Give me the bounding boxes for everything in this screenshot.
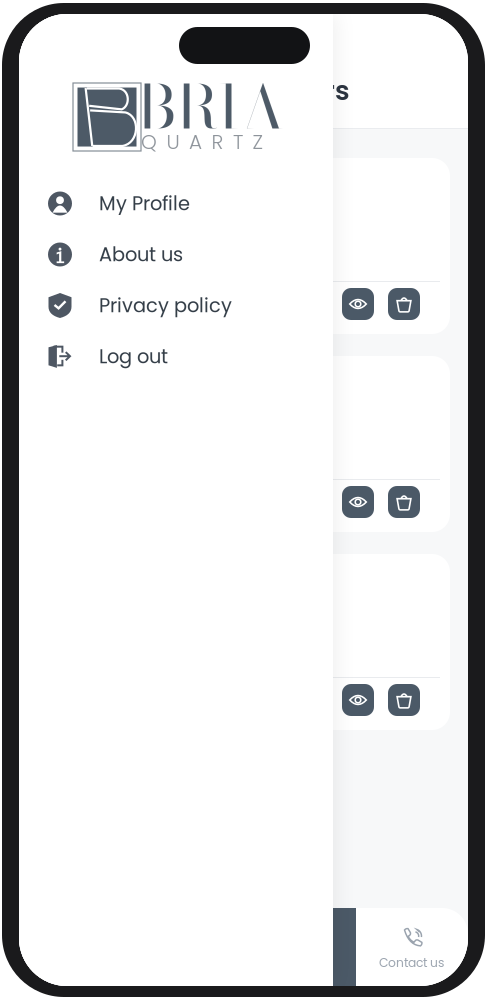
- button[interactable]: View order: [342, 288, 374, 320]
- button[interactable]: My Profile: [19, 178, 333, 229]
- button[interactable]: Delete order: [388, 684, 420, 716]
- button[interactable]: Contact us: [19, 908, 468, 986]
- button[interactable]: Delete order: [388, 288, 420, 320]
- button[interactable]: View order: [342, 486, 374, 518]
- button[interactable]: View order: [342, 684, 374, 716]
- button[interactable]: Delete order: [388, 486, 420, 518]
- staticText: Log out: [99, 343, 168, 370]
- staticText: My Profile: [99, 190, 190, 217]
- staticText: About us: [99, 241, 183, 268]
- button[interactable]: Log out: [19, 331, 333, 382]
- staticText: Privacy policy: [99, 292, 232, 319]
- button[interactable]: Privacy policy: [19, 280, 333, 331]
- staticText: QUARTZ: [141, 128, 263, 156]
- button[interactable]: About us: [19, 229, 333, 280]
- staticText: My Orders: [212, 72, 350, 109]
- staticText: BRIA: [138, 61, 284, 152]
- staticText: Contact us: [379, 954, 444, 971]
